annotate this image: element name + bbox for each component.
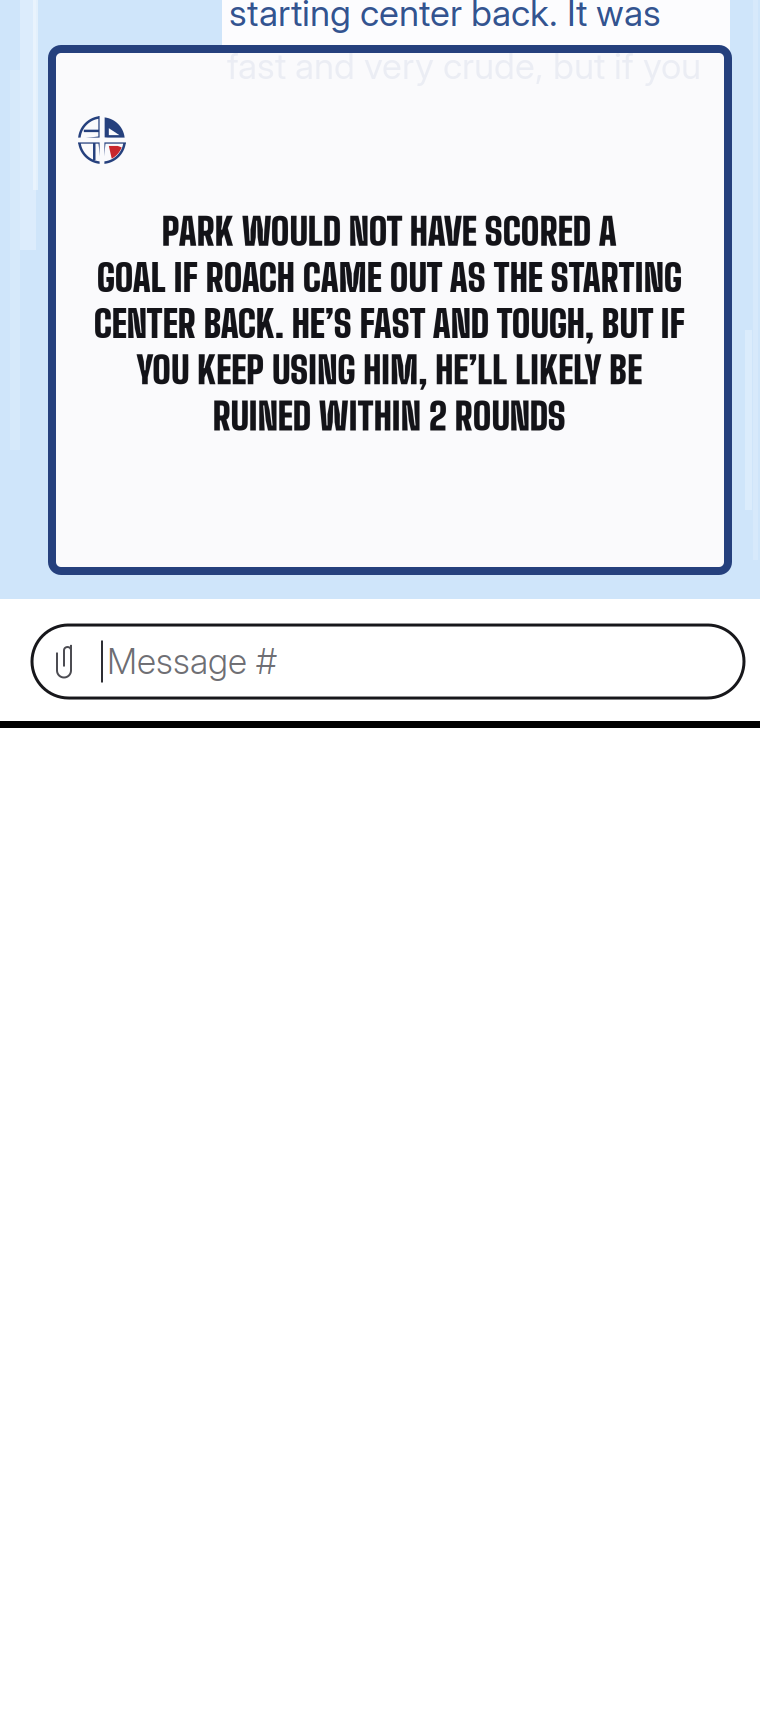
staticText: PARK WOULD NOT HAVE SCORED A GOAL IF ROA…	[93, 209, 684, 438]
staticText: starting center back. It was	[229, 0, 661, 35]
staticText: Message #	[107, 640, 277, 682]
staticText: fast and very crude, but if you	[227, 44, 701, 88]
staticText: fast and very crude, but if you	[229, 39, 636, 126]
button[interactable]: Message #	[32, 625, 744, 698]
